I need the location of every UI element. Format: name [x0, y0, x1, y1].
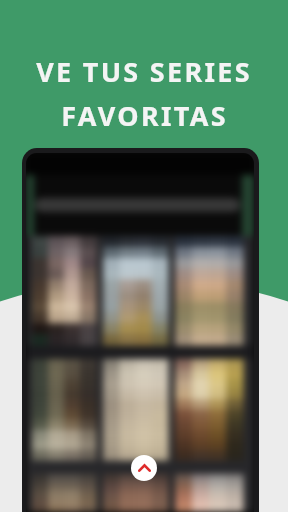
button[interactable]: Scroll to top [131, 455, 157, 481]
staticText: VE TUS SERIES [36, 53, 252, 90]
staticText: FAVORITAS [61, 97, 228, 134]
